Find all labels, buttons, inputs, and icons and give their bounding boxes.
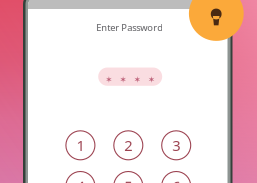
staticText: 1	[76, 136, 84, 155]
staticText: 2	[124, 136, 132, 155]
staticText: 4	[76, 176, 84, 183]
button[interactable]: 2	[114, 131, 143, 160]
button[interactable]: 3	[162, 131, 191, 160]
staticText: 3	[172, 136, 180, 155]
button[interactable]: 6	[162, 171, 191, 183]
button[interactable]: 1	[66, 131, 95, 160]
staticText: 5	[124, 176, 132, 183]
staticText: Enter Password	[96, 21, 163, 33]
staticText: 6	[172, 176, 180, 183]
button[interactable]: 5	[114, 171, 143, 183]
button[interactable]: 4	[66, 171, 95, 183]
